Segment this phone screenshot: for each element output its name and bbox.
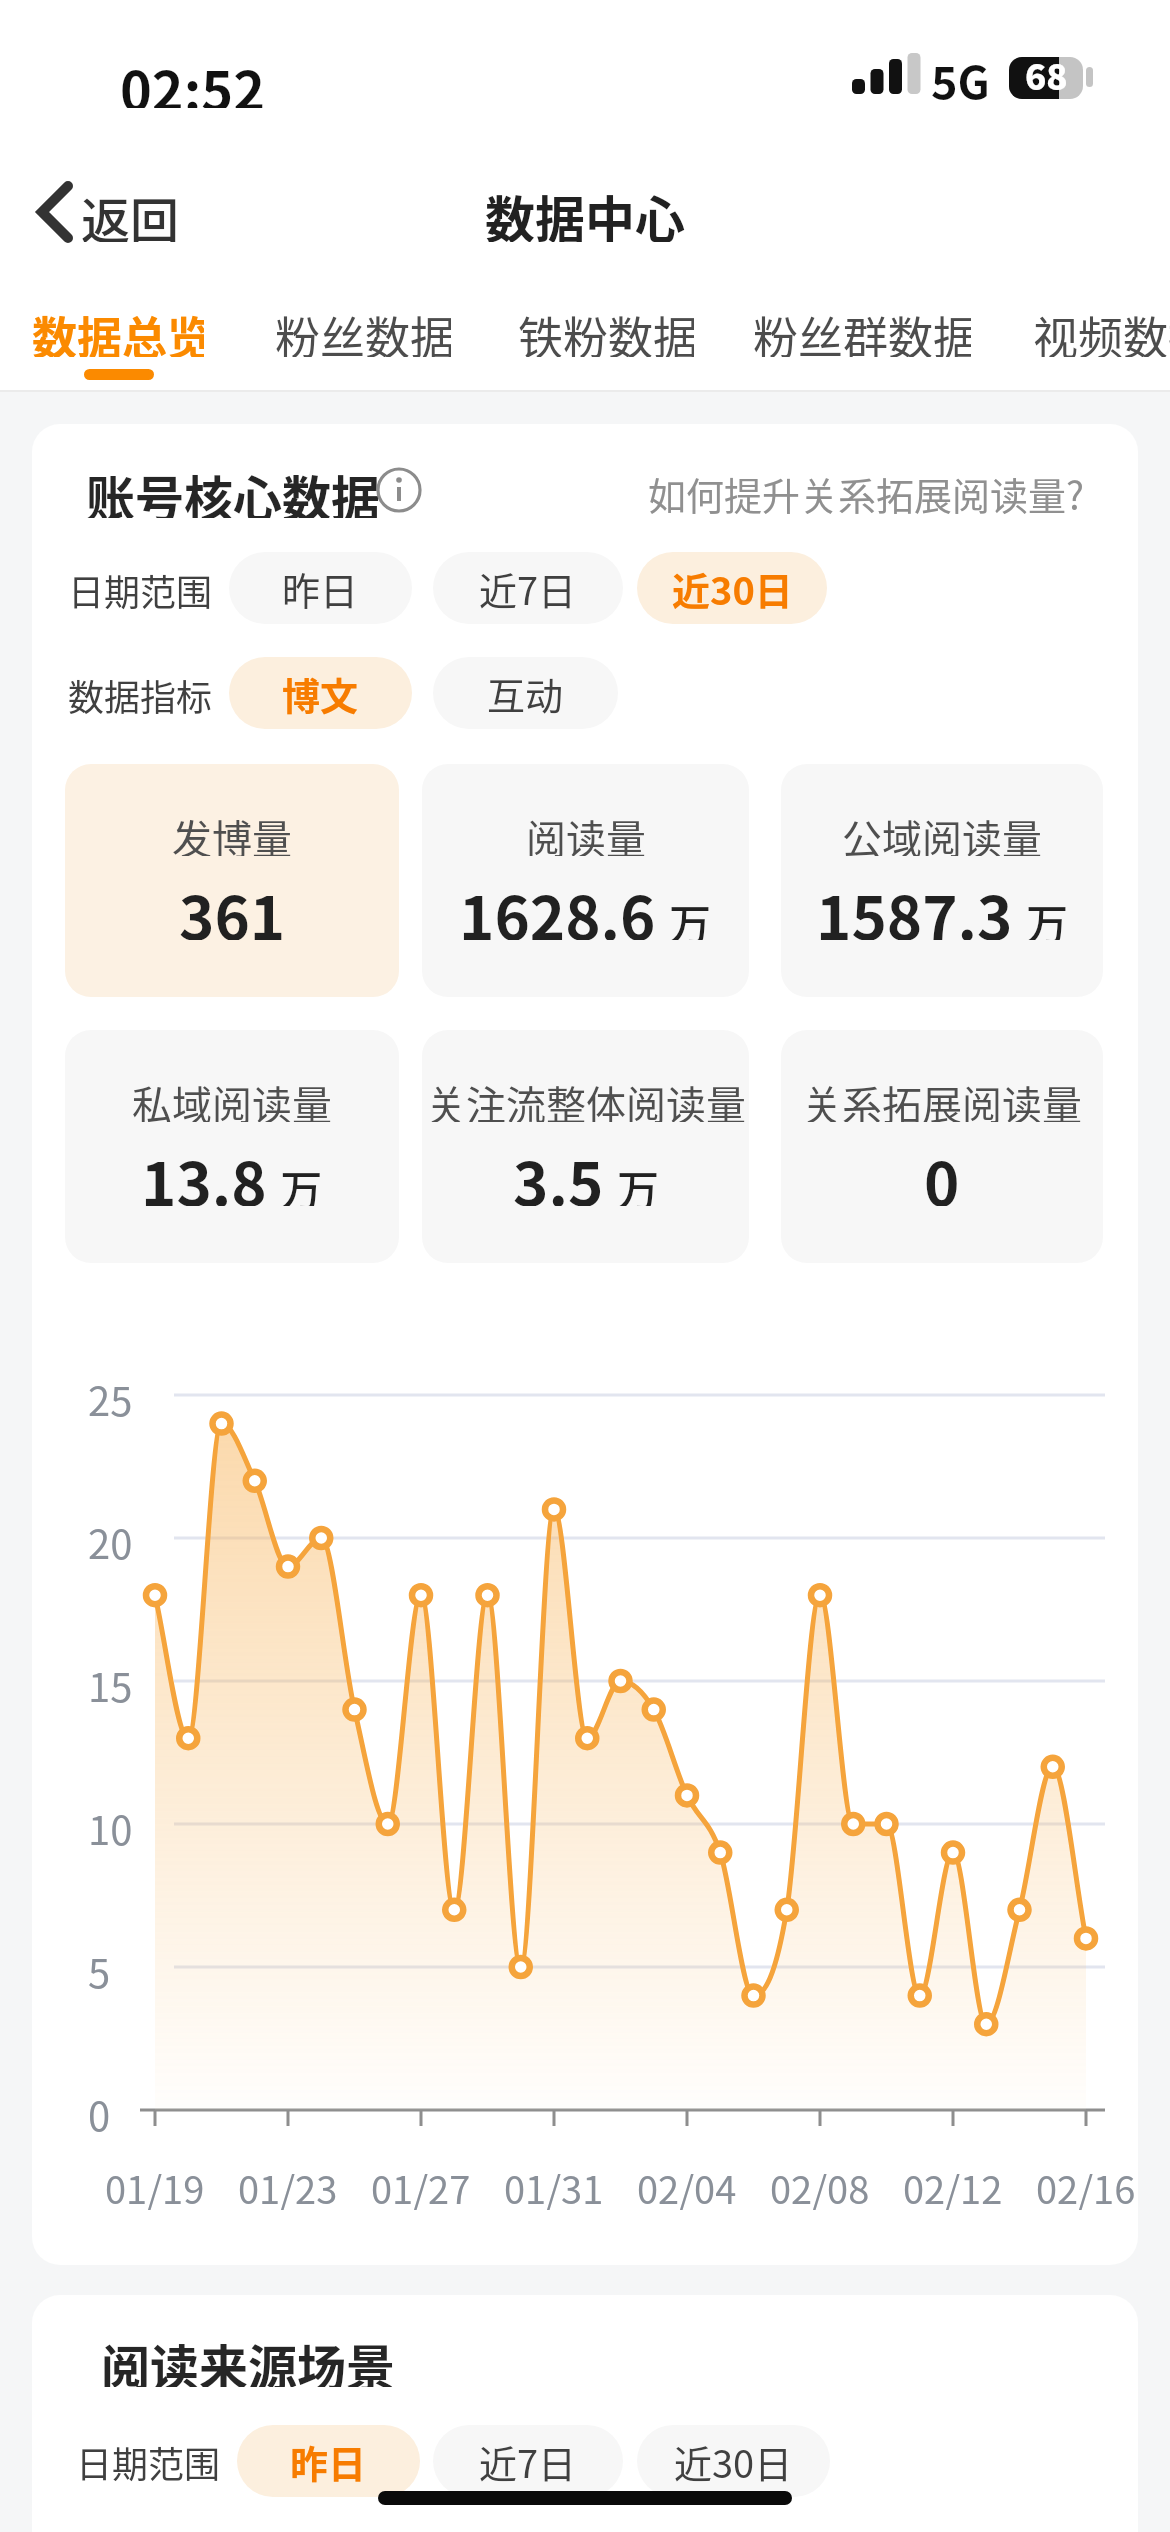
button[interactable] <box>36 184 76 240</box>
staticText: 近7日 <box>479 561 577 616</box>
button[interactable]: 粉丝群数据 <box>753 303 971 357</box>
staticText: 私域阅读量 <box>132 1074 332 1122</box>
staticText: 账号核心数据 <box>86 460 381 518</box>
staticText: 68 <box>1025 49 1068 95</box>
staticText: 阅读来源场景 <box>101 2329 396 2387</box>
staticText: 5 <box>88 1942 111 1992</box>
staticText: 互动 <box>487 666 564 721</box>
staticText: 1587.3 万 <box>816 870 1069 940</box>
staticText: 0 <box>88 2085 111 2135</box>
staticText: 13.8 万 <box>141 1136 323 1206</box>
staticText: 5G <box>931 47 990 107</box>
button[interactable]: 近30日 <box>637 552 827 624</box>
staticText: 关系拓展阅读量 <box>802 1074 1082 1122</box>
staticText: 铁粉数据 <box>518 303 694 357</box>
staticText: 02/12 <box>903 2160 1003 2210</box>
staticText: 近30日 <box>672 561 793 616</box>
staticText: 公域阅读量 <box>842 808 1042 856</box>
button[interactable]: 数据总览 <box>32 303 204 357</box>
staticText: 昨日 <box>282 561 359 616</box>
staticText: 返回 <box>81 182 180 242</box>
staticText: 3.5 万 <box>513 1136 659 1206</box>
staticText: 01/27 <box>371 2160 471 2210</box>
staticText: 阅读量 <box>526 808 646 856</box>
staticText: 01/31 <box>504 2160 604 2210</box>
button[interactable]: 近7日 <box>433 552 623 624</box>
staticText: 数据指标 <box>68 669 213 717</box>
staticText: 数据总览 <box>32 303 204 357</box>
button[interactable]: 博文 <box>229 657 412 729</box>
staticText: 361 <box>179 870 286 940</box>
staticText: 日期范围 <box>68 564 213 612</box>
button[interactable]: 昨日 <box>237 2425 420 2497</box>
staticText: 如何提升关系拓展阅读量? <box>648 466 1085 516</box>
button[interactable]: 互动 <box>433 657 618 729</box>
staticText: 02:52 <box>120 48 265 108</box>
staticText: 01/23 <box>238 2160 338 2210</box>
staticText: 近7日 <box>479 2434 577 2489</box>
button[interactable] <box>376 467 422 513</box>
staticText: 25 <box>88 1370 133 1420</box>
staticText: 02/04 <box>637 2160 737 2210</box>
button[interactable]: 返回 <box>78 182 183 242</box>
staticText: 发博量 <box>172 808 292 856</box>
staticText: 数据中心 <box>485 180 685 242</box>
button[interactable]: 粉丝数据 <box>275 303 451 357</box>
staticText: 01/19 <box>105 2160 205 2210</box>
staticText: 10 <box>88 1799 133 1849</box>
button[interactable]: 如何提升关系拓展阅读量? <box>632 466 1085 516</box>
staticText: 20 <box>88 1513 133 1563</box>
staticText: 粉丝数据 <box>275 303 451 357</box>
staticText: 粉丝群数据 <box>753 303 971 357</box>
staticText: 日期范围 <box>76 2436 221 2484</box>
staticText: 近30日 <box>674 2434 793 2489</box>
button[interactable]: 昨日 <box>229 552 412 624</box>
staticText: 02/16 <box>1036 2160 1136 2210</box>
staticText: 关注流整体阅读量 <box>426 1074 746 1122</box>
button[interactable]: 近30日 <box>637 2425 830 2497</box>
button[interactable]: 铁粉数据 <box>518 303 694 357</box>
staticText: 1628.6 万 <box>459 870 712 940</box>
staticText: 02/08 <box>770 2160 870 2210</box>
staticText: 昨日 <box>290 2434 367 2489</box>
button[interactable]: 近7日 <box>433 2425 623 2497</box>
staticText: 15 <box>88 1656 133 1706</box>
button[interactable]: 视频数据 <box>1033 303 1170 357</box>
staticText: 博文 <box>282 666 359 721</box>
staticText: 视频数据 <box>1033 303 1170 357</box>
staticText: 0 <box>924 1136 960 1206</box>
